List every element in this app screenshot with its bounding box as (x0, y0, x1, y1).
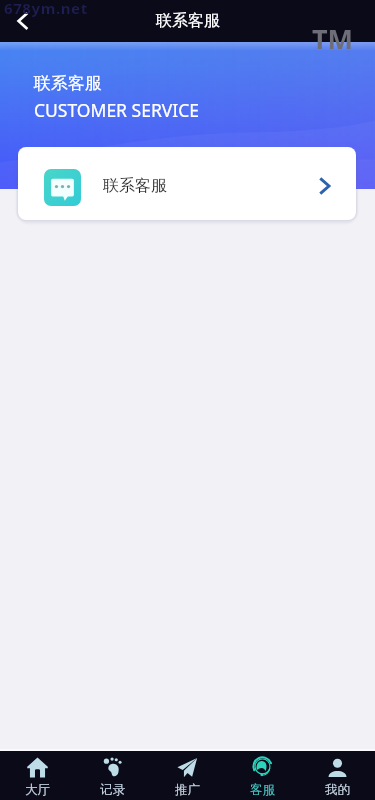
button[interactable]: 我的 (300, 751, 375, 800)
button[interactable]: 记录 (75, 751, 150, 800)
button[interactable]: 联系客服 (18, 147, 356, 220)
button[interactable]: Back (5, 3, 41, 39)
staticText: CUSTOMER SERVICE (34, 98, 199, 122)
button[interactable]: 大厅 (0, 751, 75, 800)
staticText: 联系客服 (156, 11, 220, 31)
staticText: 客服 (250, 782, 275, 798)
button[interactable]: 推广 (150, 751, 225, 800)
staticText: 678ym.net (4, 0, 88, 18)
staticText: 记录 (100, 782, 125, 798)
staticText: 联系客服 (103, 176, 167, 196)
staticText: 推广 (175, 782, 200, 798)
staticText: 我的 (325, 782, 350, 798)
staticText: 联系客服 (34, 73, 102, 94)
staticText: TM (312, 20, 354, 57)
staticText: 大厅 (25, 782, 50, 798)
button[interactable]: 客服 (225, 751, 300, 800)
